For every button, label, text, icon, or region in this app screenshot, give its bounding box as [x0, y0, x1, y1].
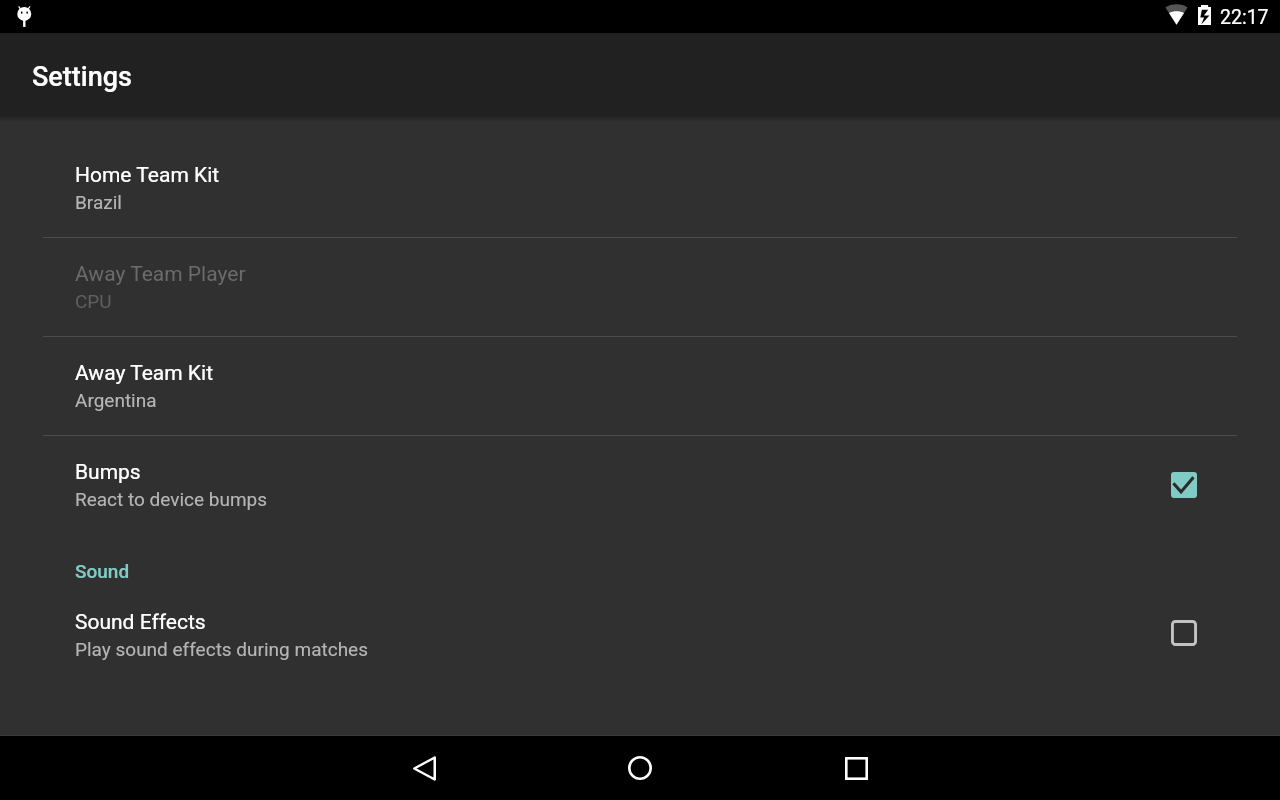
staticText: Bumps — [75, 460, 141, 485]
staticText: CPU — [75, 290, 112, 312]
button[interactable]: Bumps — [43, 434, 1237, 532]
staticText: Play sound effects during matches — [75, 638, 368, 660]
staticText: Sound Effects — [75, 610, 206, 635]
staticText: Away Team Player — [75, 262, 246, 287]
button[interactable]: Sound effects disabled — [1160, 609, 1208, 657]
staticText: Home Team Kit — [75, 163, 220, 188]
staticText: Sound — [75, 560, 130, 582]
button[interactable]: Sound Effects — [43, 584, 1237, 682]
button[interactable]: Home — [608, 736, 672, 800]
staticText: 22:17 — [1220, 6, 1269, 29]
button[interactable]: Back — [392, 736, 456, 800]
button[interactable]: Away Team Player — [43, 236, 1237, 334]
staticText: React to device bumps — [75, 488, 268, 510]
button[interactable]: Away Team Kit — [43, 335, 1237, 433]
staticText: Settings — [32, 61, 132, 93]
staticText: Away Team Kit — [75, 361, 213, 386]
button[interactable]: Recent apps — [824, 736, 888, 800]
staticText: Argentina — [75, 389, 157, 411]
staticText: Brazil — [75, 191, 122, 213]
button[interactable]: Bumps enabled — [1160, 461, 1208, 509]
button[interactable]: Home Team Kit — [43, 137, 1237, 235]
